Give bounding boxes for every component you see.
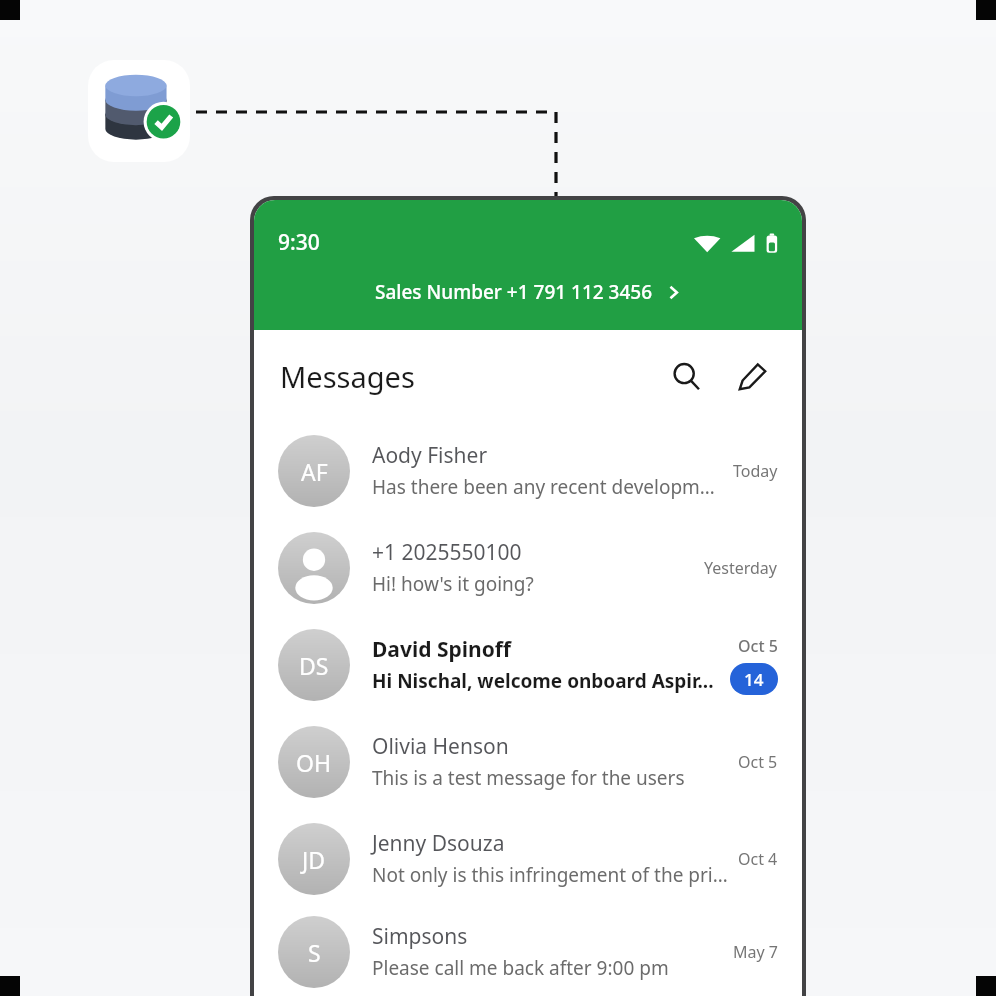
staticText: Aody Fisher [372, 441, 488, 470]
button[interactable]: JD [254, 810, 802, 907]
staticText: Please call me back after 9:00 pm [372, 955, 669, 981]
button[interactable]: Compose new message [730, 354, 774, 398]
staticText: Oct 5 [738, 751, 778, 773]
button[interactable]: DS [254, 616, 802, 713]
button[interactable]: Sales Number +1 791 112 3456 [254, 279, 802, 305]
staticText: Olivia Henson [372, 732, 509, 761]
staticText: Yesterday [704, 557, 778, 579]
staticText: Oct 4 [738, 848, 778, 870]
button[interactable]: AF [254, 422, 802, 519]
staticText: This is a test message for the users [372, 765, 685, 791]
staticText: Jenny Dsouza [372, 829, 505, 858]
staticText: Hi! how's it going? [372, 571, 534, 597]
staticText: Today [733, 460, 778, 482]
button[interactable]: S [254, 907, 802, 996]
staticText: Oct 5 [738, 635, 778, 657]
staticText: Sales Number +1 791 112 3456 [375, 279, 653, 305]
staticText: Has there been any recent development... [372, 474, 723, 500]
staticText: 9:30 [278, 228, 320, 257]
staticText: +1 2025550100 [372, 538, 522, 567]
staticText: S [308, 937, 321, 968]
staticText: Simpsons [372, 922, 468, 951]
staticText: DS [299, 650, 329, 681]
staticText: Hi Nischal, welcome onboard Aspir... [372, 668, 714, 694]
button[interactable]: Database connected [88, 60, 190, 162]
button[interactable]: Search [664, 354, 708, 398]
staticText: 14 [744, 668, 764, 691]
button[interactable]: +1 2025550100 [254, 519, 802, 616]
staticText: Not only is this infringement of the pri… [372, 862, 728, 888]
button[interactable]: OH [254, 713, 802, 810]
staticText: AF [301, 456, 328, 487]
staticText: Messages [280, 357, 415, 396]
staticText: JD [302, 844, 326, 875]
staticText: OH [296, 747, 332, 778]
staticText: David Spinoff [372, 635, 512, 664]
staticText: May 7 [733, 941, 778, 963]
